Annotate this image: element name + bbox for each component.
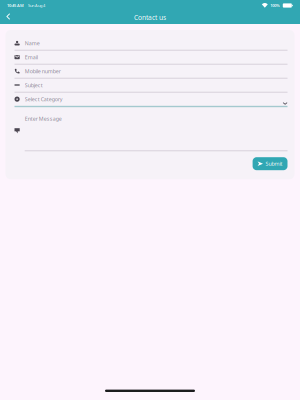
button[interactable]: Mobile number bbox=[5, 64, 294, 78]
staticText: Sun Aug 4 bbox=[28, 3, 45, 8]
button[interactable]: Enter Message bbox=[5, 107, 294, 151]
button[interactable]: Email bbox=[5, 50, 294, 64]
staticText: Submit bbox=[265, 160, 282, 167]
staticText: 10:45 AM bbox=[7, 3, 24, 8]
staticText: Select Category bbox=[25, 96, 63, 103]
staticText: Contact us bbox=[134, 13, 166, 22]
button[interactable]: Name bbox=[5, 36, 294, 50]
button[interactable]: Subject bbox=[5, 78, 294, 92]
staticText: Name bbox=[25, 40, 40, 47]
staticText: Email bbox=[25, 54, 38, 61]
button[interactable]: Submit bbox=[253, 157, 287, 170]
button[interactable]: Select Category bbox=[5, 92, 294, 107]
staticText: Mobile number bbox=[25, 68, 61, 75]
button[interactable]: Back bbox=[0, 12, 15, 23]
staticText: Enter Message bbox=[25, 115, 62, 122]
staticText: 100% bbox=[270, 3, 280, 8]
staticText: Subject bbox=[25, 82, 43, 89]
